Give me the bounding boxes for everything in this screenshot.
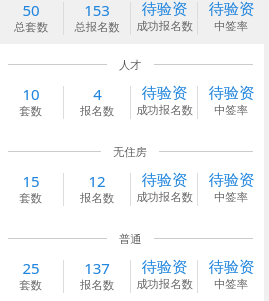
button[interactable]: 待验资 <box>131 0 197 33</box>
button[interactable]: 4 <box>64 84 130 118</box>
staticText: 4 <box>93 84 102 104</box>
staticText: 12 <box>88 171 106 191</box>
staticText: 无住房 <box>113 145 147 159</box>
button[interactable]: 50 <box>0 0 63 34</box>
staticText: 15 <box>22 171 40 191</box>
button[interactable]: 待验资 <box>198 84 264 117</box>
staticText: 报名数 <box>80 278 114 292</box>
staticText: 待验资 <box>209 0 254 19</box>
staticText: 人才 <box>119 58 142 72</box>
button[interactable]: 153 <box>64 0 130 34</box>
staticText: 137 <box>84 258 110 278</box>
staticText: 待验资 <box>142 0 187 19</box>
staticText: 总报名数 <box>74 20 120 34</box>
staticText: 25 <box>22 258 40 278</box>
button[interactable]: 12 <box>64 171 130 205</box>
staticText: 成功报名数 <box>136 277 193 291</box>
staticText: 中签率 <box>214 277 248 291</box>
button[interactable]: 待验资 <box>198 0 264 33</box>
button[interactable]: 待验资 <box>131 171 197 204</box>
staticText: 成功报名数 <box>136 190 193 204</box>
button[interactable]: 15 <box>0 171 63 205</box>
staticText: 套数 <box>19 104 42 118</box>
staticText: 待验资 <box>209 171 254 190</box>
button[interactable]: 待验资 <box>198 171 264 204</box>
button[interactable]: 137 <box>64 258 130 292</box>
staticText: 待验资 <box>142 258 187 277</box>
button[interactable]: 待验资 <box>198 258 264 291</box>
staticText: 成功报名数 <box>136 19 193 33</box>
staticText: 总套数 <box>14 20 48 34</box>
staticText: 套数 <box>19 191 42 205</box>
staticText: 成功报名数 <box>136 103 193 117</box>
staticText: 中签率 <box>214 190 248 204</box>
staticText: 153 <box>84 0 110 20</box>
staticText: 10 <box>22 84 40 104</box>
staticText: 待验资 <box>209 258 254 277</box>
button[interactable]: 待验资 <box>131 84 197 117</box>
staticText: 待验资 <box>209 84 254 103</box>
staticText: 中签率 <box>214 19 248 33</box>
staticText: 套数 <box>19 278 42 292</box>
staticText: 待验资 <box>142 171 187 190</box>
staticText: 普通 <box>119 232 142 246</box>
staticText: 待验资 <box>142 84 187 103</box>
button[interactable]: 25 <box>0 258 63 292</box>
button[interactable]: 10 <box>0 84 63 118</box>
staticText: 50 <box>22 0 40 20</box>
staticText: 报名数 <box>80 104 114 118</box>
staticText: 中签率 <box>214 103 248 117</box>
staticText: 报名数 <box>80 191 114 205</box>
button[interactable]: 待验资 <box>131 258 197 291</box>
